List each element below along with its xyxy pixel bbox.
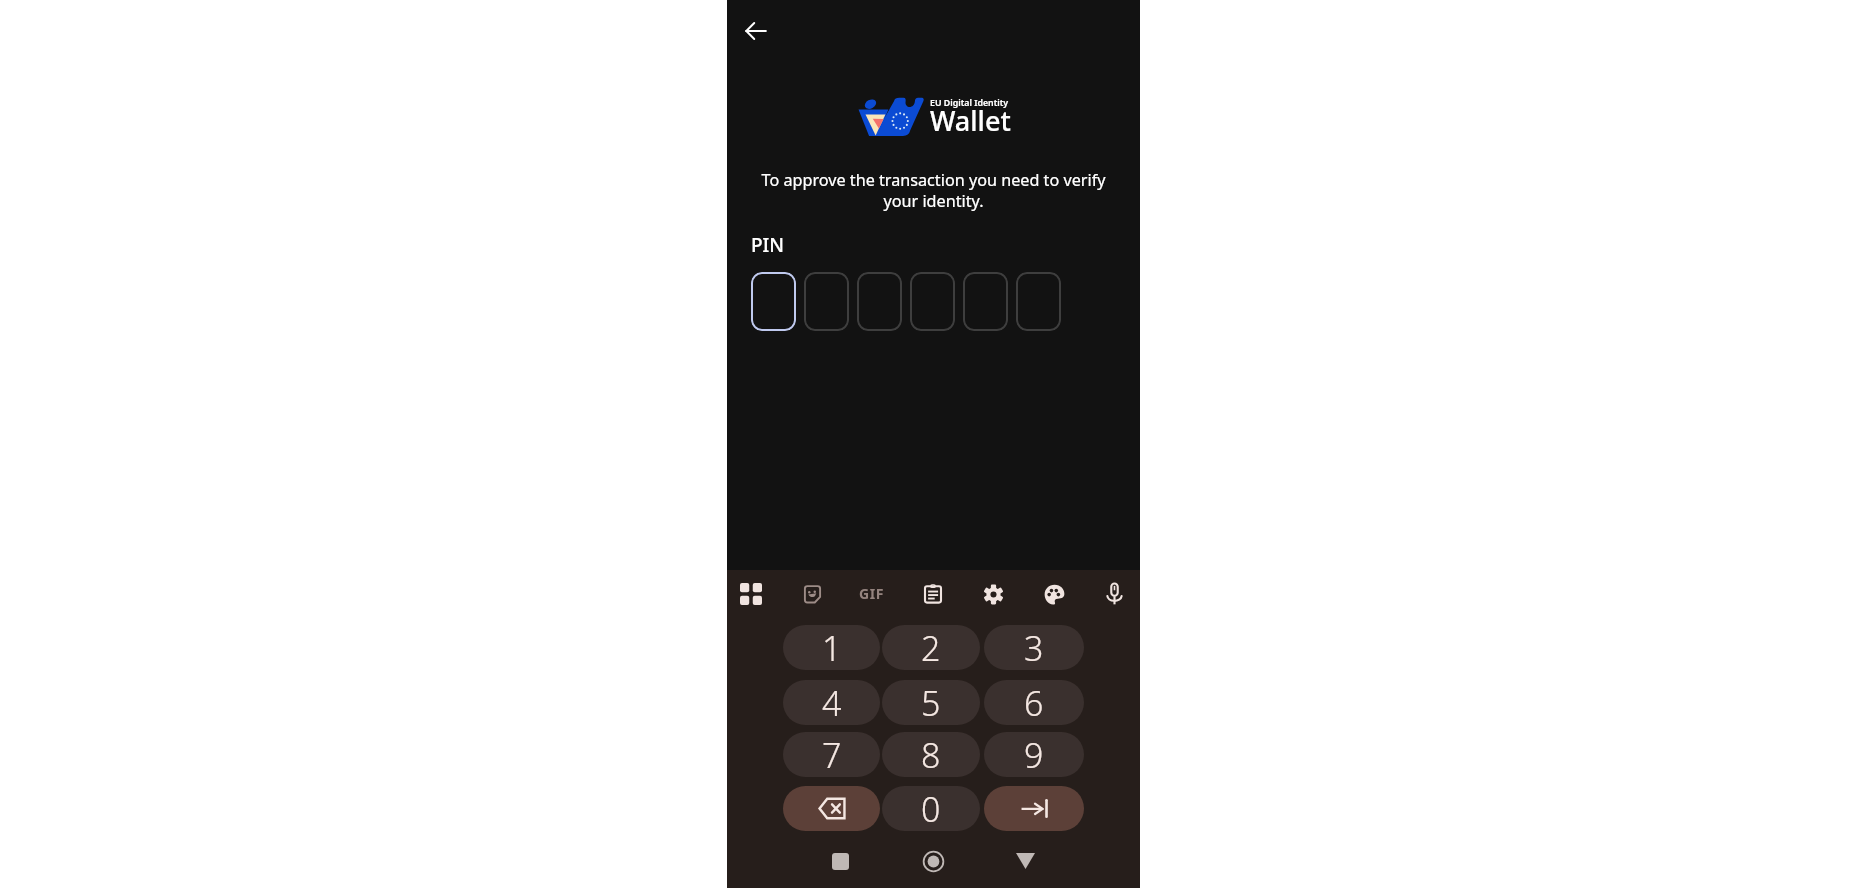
button[interactable]: 0	[882, 786, 980, 831]
button[interactable]: 4	[783, 680, 880, 725]
button[interactable]: PIN digit 6	[1016, 272, 1061, 331]
button[interactable]: 5	[882, 680, 980, 725]
button[interactable]: 6	[984, 680, 1084, 725]
button[interactable]: 7	[783, 732, 880, 777]
staticText: GIF	[859, 584, 885, 603]
button[interactable]: 8	[882, 732, 980, 777]
button[interactable]: Hide keyboard	[994, 834, 1056, 888]
button[interactable]: Stickers	[790, 571, 834, 617]
staticText: To approve the transaction you need to v…	[752, 169, 1115, 212]
button[interactable]: Clipboard	[911, 571, 955, 617]
staticText: 0	[921, 786, 941, 831]
staticText: 6	[1024, 680, 1044, 725]
button[interactable]: GIF	[850, 571, 894, 617]
button[interactable]: Settings	[971, 571, 1015, 617]
staticText: 9	[1024, 732, 1044, 777]
button[interactable]: PIN digit 1	[751, 272, 796, 331]
button[interactable]: 1	[783, 625, 880, 670]
button[interactable]: Home	[902, 834, 964, 888]
staticText: 2	[921, 625, 941, 670]
button[interactable]: Voice input	[1092, 571, 1136, 617]
staticText: 5	[921, 680, 941, 725]
button[interactable]: PIN digit 5	[963, 272, 1008, 331]
button[interactable]: PIN digit 3	[857, 272, 902, 331]
staticText: PIN	[751, 232, 785, 258]
button[interactable]: Apps	[729, 571, 773, 617]
button[interactable]: Backspace	[783, 786, 880, 831]
staticText: 8	[921, 732, 941, 777]
staticText: Wallet	[930, 102, 1011, 139]
button[interactable]: Next	[984, 786, 1084, 831]
staticText: 7	[822, 732, 842, 777]
button[interactable]: Recents	[809, 834, 871, 888]
button[interactable]: PIN digit 2	[804, 272, 849, 331]
staticText: EU Digital Identity	[930, 97, 1009, 109]
button[interactable]: PIN digit 4	[910, 272, 955, 331]
button[interactable]: 3	[984, 625, 1084, 670]
staticText: 1	[822, 625, 842, 670]
staticText: 4	[822, 680, 842, 725]
button[interactable]: 2	[882, 625, 980, 670]
button[interactable]: Themes	[1032, 571, 1076, 617]
staticText: 3	[1024, 625, 1044, 670]
button[interactable]: Back	[733, 8, 779, 54]
button[interactable]: 9	[984, 732, 1084, 777]
